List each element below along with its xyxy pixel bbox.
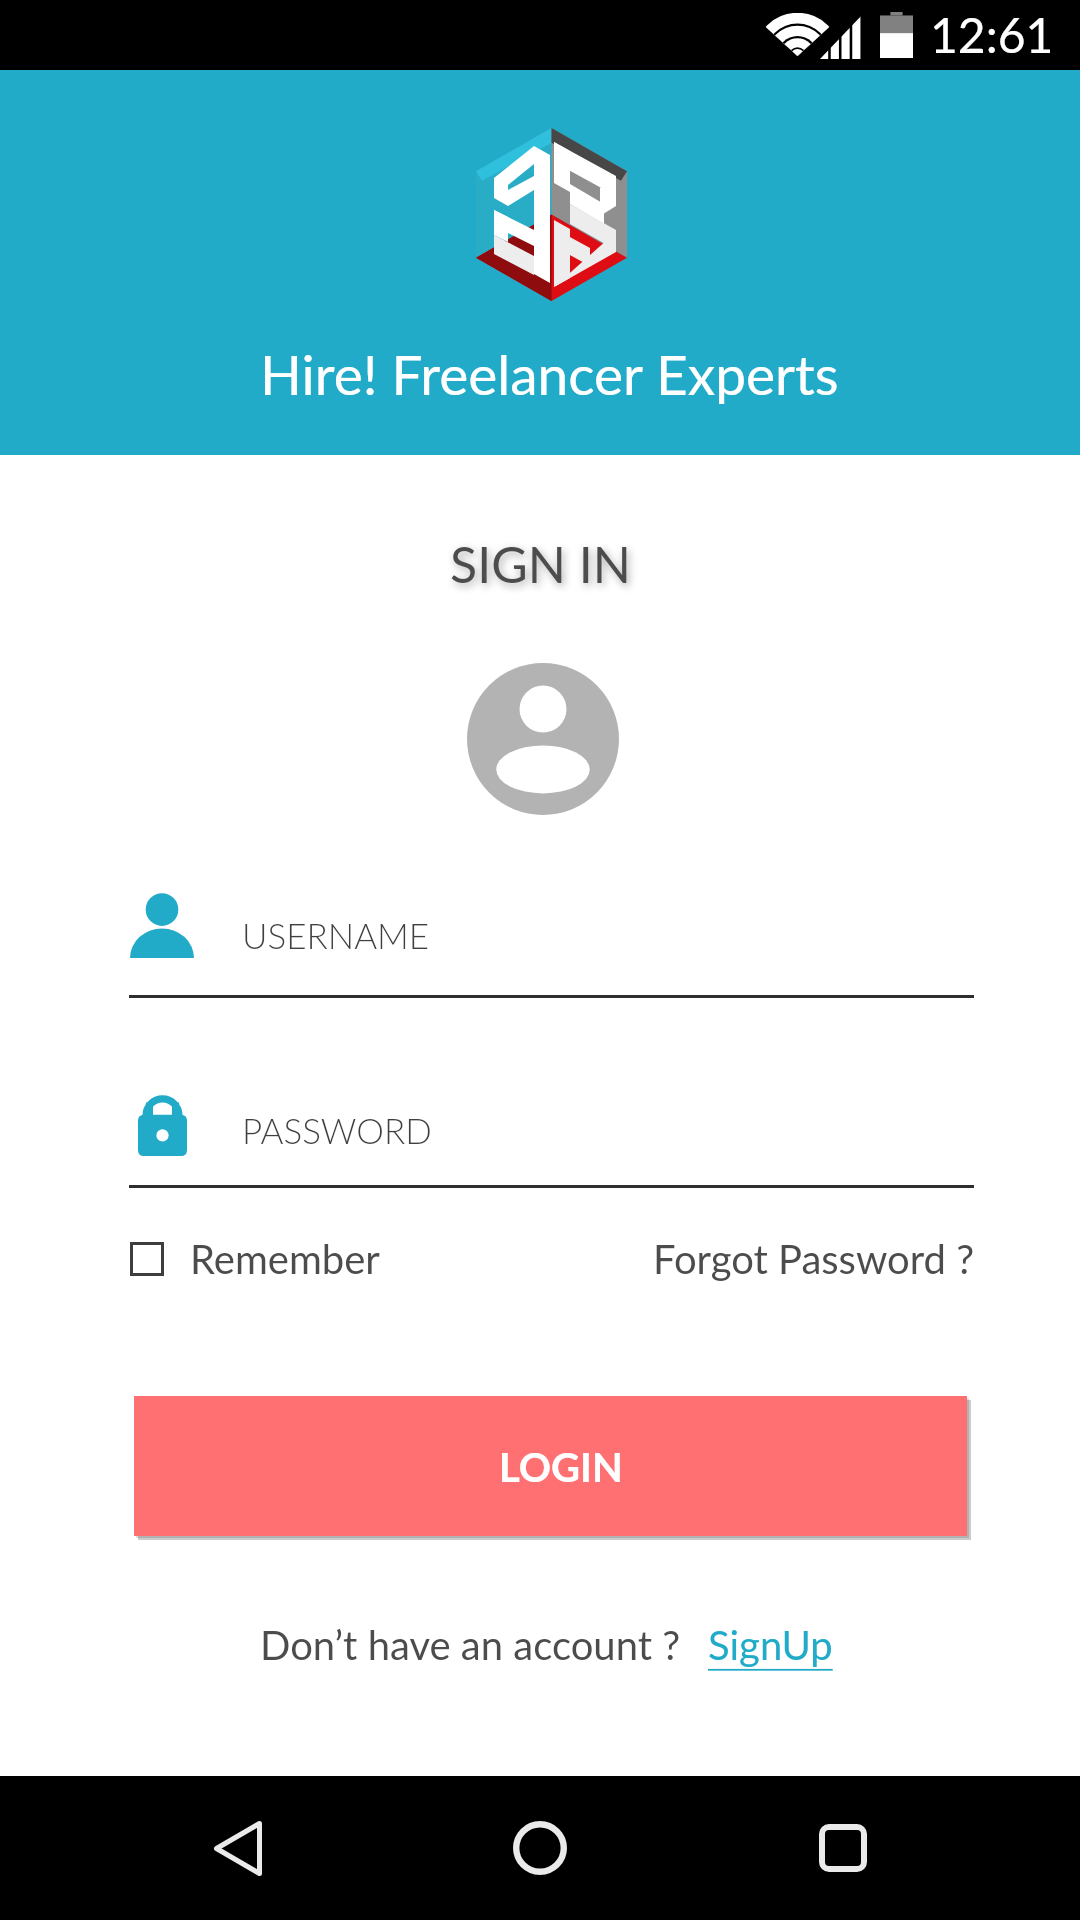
button[interactable]: PASSWORD	[129, 1080, 974, 1188]
staticText: Hire! Freelancer Experts	[260, 341, 839, 407]
button[interactable]: Forgot Password ?	[653, 1235, 975, 1283]
staticText: 12:61	[930, 6, 1054, 64]
staticText: SignUp	[708, 1621, 833, 1669]
button[interactable]: Recents	[778, 1783, 908, 1913]
button[interactable]: Back	[173, 1783, 303, 1913]
button[interactable]: Home	[475, 1783, 605, 1913]
staticText: SIGN IN	[450, 534, 631, 594]
staticText: PASSWORD	[242, 1109, 432, 1151]
button[interactable]: SignUp	[708, 1621, 833, 1669]
staticText: Don’t have an account ?	[260, 1621, 681, 1669]
button[interactable]: Remember	[130, 1235, 380, 1283]
staticText: LOGIN	[499, 1443, 623, 1491]
staticText: Remember	[190, 1235, 380, 1283]
button[interactable]: USERNAME	[129, 880, 974, 998]
button[interactable]: LOGIN	[134, 1396, 967, 1536]
staticText: USERNAME	[242, 914, 430, 956]
staticText: Forgot Password ?	[653, 1235, 975, 1283]
